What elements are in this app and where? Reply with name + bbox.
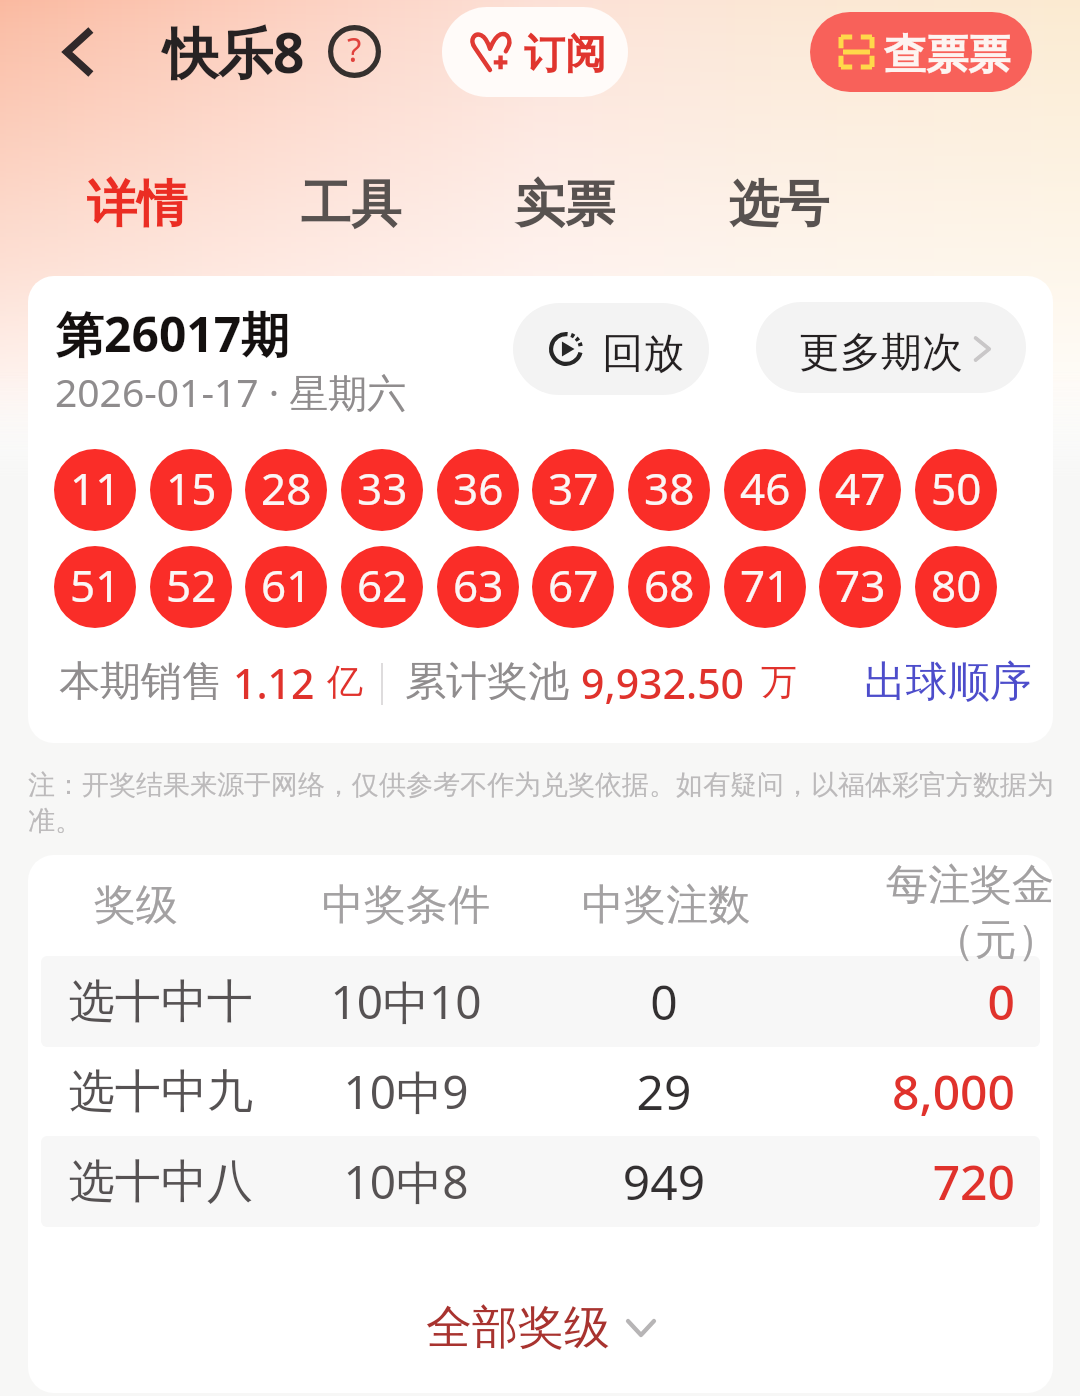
staticText: 37	[548, 458, 599, 518]
staticText: 选十中九	[28, 1063, 321, 1121]
button[interactable]: 更多期次	[756, 302, 1026, 393]
staticText: 28	[261, 458, 312, 518]
button[interactable]: 28	[245, 449, 327, 531]
staticText: 全部奖级	[426, 1299, 610, 1357]
button[interactable]: 全部奖级	[28, 1283, 1053, 1373]
button[interactable]: 67	[532, 546, 614, 628]
button[interactable]: 选十中八	[28, 1136, 1053, 1227]
staticText: 选十中十	[28, 973, 321, 1031]
staticText: 80	[931, 555, 982, 615]
staticText: 51	[70, 555, 121, 615]
staticText: 29	[504, 1059, 824, 1124]
button[interactable]: 33	[341, 449, 423, 531]
staticText: 0	[628, 969, 1015, 1034]
button[interactable]: 38	[628, 449, 710, 531]
staticText: 0	[504, 969, 824, 1034]
staticText: 查票票	[884, 29, 1010, 82]
staticText: 68	[644, 555, 695, 615]
staticText: 10中10	[246, 970, 566, 1033]
button[interactable]: 出球顺序	[856, 652, 1024, 705]
staticText: 47	[835, 458, 886, 518]
staticText: 1.12	[233, 655, 315, 711]
button[interactable]: Back	[44, 18, 112, 86]
staticText: 63	[453, 555, 504, 615]
button[interactable]: 15	[150, 449, 232, 531]
button[interactable]: 62	[341, 546, 423, 628]
staticText: 本期销售	[59, 656, 223, 708]
staticText: 10中8	[246, 1150, 566, 1213]
button[interactable]: 73	[819, 546, 901, 628]
staticText: 15	[166, 458, 217, 518]
staticText: （元）	[846, 914, 1053, 967]
staticText: 万	[761, 659, 797, 704]
staticText: 9,932.50	[581, 655, 745, 711]
button[interactable]: 61	[245, 546, 327, 628]
button[interactable]: 37	[532, 449, 614, 531]
button[interactable]: 68	[628, 546, 710, 628]
button[interactable]: 订阅	[442, 7, 628, 97]
staticText: 10中9	[246, 1060, 566, 1123]
staticText: 73	[835, 555, 886, 615]
button[interactable]: 选十中九	[28, 1046, 1053, 1137]
button[interactable]: 回放	[513, 303, 709, 395]
staticText: 33	[357, 458, 408, 518]
staticText: 中奖条件	[256, 879, 556, 932]
staticText: 中奖注数	[516, 879, 816, 932]
staticText: 亿	[327, 659, 363, 704]
staticText: 71	[740, 555, 791, 615]
staticText: 50	[931, 458, 982, 518]
button[interactable]: 11	[54, 449, 136, 531]
staticText: 36	[453, 458, 504, 518]
staticText: 每注奖金	[820, 859, 1053, 912]
staticText: 949	[504, 1149, 824, 1214]
button[interactable]: 52	[150, 546, 232, 628]
button[interactable]: 46	[724, 449, 806, 531]
button[interactable]: 查票票	[810, 12, 1032, 92]
staticText: 52	[166, 555, 217, 615]
staticText: 订阅	[524, 29, 606, 81]
button[interactable]: 51	[54, 546, 136, 628]
staticText: 8,000	[628, 1059, 1015, 1124]
staticText: 62	[357, 555, 408, 615]
button[interactable]: 实票	[491, 160, 639, 248]
staticText: 720	[628, 1149, 1015, 1214]
button[interactable]: 50	[915, 449, 997, 531]
button[interactable]: Help	[325, 22, 383, 80]
staticText: 46	[740, 458, 791, 518]
staticText: 快乐8	[163, 14, 305, 89]
button[interactable]: 36	[437, 449, 519, 531]
button[interactable]: 63	[437, 546, 519, 628]
staticText: 61	[261, 555, 312, 615]
staticText: 选十中八	[28, 1153, 321, 1211]
staticText: 实票	[515, 173, 615, 236]
staticText: 注：开奖结果来源于网络，仅供参考不作为兑奖依据。如有疑问，以福体彩官方数据为准。	[28, 768, 1058, 838]
staticText: ?	[347, 27, 362, 72]
button[interactable]: 选十中十	[28, 956, 1053, 1047]
staticText: 38	[644, 458, 695, 518]
button[interactable]: 80	[915, 546, 997, 628]
staticText: 更多期次	[799, 327, 963, 379]
staticText: 2026-01-17 · 星期六	[55, 365, 407, 418]
button[interactable]: 工具	[277, 160, 425, 248]
staticText: 选号	[729, 173, 829, 236]
staticText: 累计奖池	[405, 656, 569, 708]
staticText: 第26017期	[56, 301, 290, 367]
button[interactable]: 选号	[705, 160, 853, 248]
button[interactable]: 详情	[63, 160, 211, 248]
staticText: 67	[548, 555, 599, 615]
staticText: 11	[70, 458, 121, 518]
staticText: 详情	[87, 173, 187, 236]
staticText: 出球顺序	[864, 656, 1032, 709]
button[interactable]: 47	[819, 449, 901, 531]
button[interactable]: 71	[724, 546, 806, 628]
staticText: 奖级	[28, 879, 286, 932]
staticText: 回放	[602, 328, 684, 380]
staticText: 工具	[301, 173, 401, 236]
